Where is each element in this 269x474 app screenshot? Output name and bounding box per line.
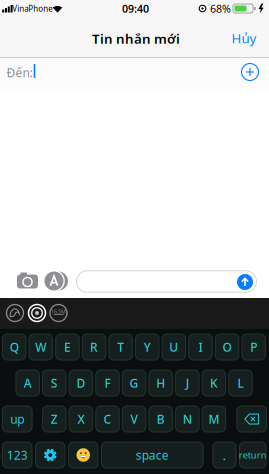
button[interactable]	[35, 442, 65, 468]
staticText: I	[198, 339, 202, 355]
button[interactable]: U	[162, 334, 186, 360]
button[interactable]: P	[242, 334, 265, 360]
staticText: Tin nhắn mới	[92, 30, 180, 47]
staticText: R	[90, 339, 98, 355]
button[interactable]: K	[202, 370, 226, 396]
staticText: Hủy	[231, 29, 256, 47]
staticText: D	[76, 375, 85, 391]
staticText: O	[223, 339, 232, 355]
button[interactable]: V	[122, 406, 146, 432]
button[interactable]	[68, 442, 98, 468]
staticText: space	[136, 447, 169, 463]
staticText: T	[117, 339, 124, 355]
button[interactable]: .	[213, 442, 236, 468]
button[interactable]	[6, 304, 23, 321]
staticText: return	[239, 449, 267, 461]
staticText: 123	[7, 447, 28, 463]
staticText: X	[77, 411, 84, 427]
button[interactable]: Y	[135, 334, 159, 360]
staticText: A	[24, 375, 32, 391]
staticText: F	[104, 375, 110, 391]
button[interactable]: Hủy	[226, 26, 262, 50]
staticText: up	[10, 411, 24, 427]
staticText: .	[222, 446, 226, 464]
button[interactable]: Z	[42, 406, 66, 432]
staticText: G	[130, 375, 139, 391]
staticText: Z	[51, 411, 58, 427]
button[interactable]: E	[56, 334, 79, 360]
button[interactable]	[237, 274, 253, 290]
button[interactable]: X	[69, 406, 93, 432]
button[interactable]	[237, 406, 266, 432]
button[interactable]: Q	[2, 334, 26, 360]
staticText: V	[131, 411, 138, 427]
staticText: B	[157, 411, 165, 427]
button[interactable]: G	[122, 370, 146, 396]
button[interactable]: 123	[2, 442, 32, 468]
button[interactable]: N	[176, 406, 199, 432]
staticText: K	[210, 375, 218, 391]
staticText: N	[183, 411, 192, 427]
staticText: U	[169, 339, 178, 355]
button[interactable]: I	[189, 334, 212, 360]
button[interactable]	[241, 63, 258, 80]
button[interactable]: H	[149, 370, 172, 396]
staticText: M	[208, 411, 219, 427]
button[interactable]: C	[96, 406, 119, 432]
staticText: E	[64, 339, 71, 355]
staticText: 16.5M	[51, 308, 66, 315]
button[interactable]: S	[42, 370, 66, 396]
button[interactable]: R	[82, 334, 106, 360]
staticText: Đến:	[6, 64, 32, 80]
button[interactable]	[0, 57, 269, 89]
staticText: P	[250, 339, 257, 355]
button[interactable]: A	[16, 370, 39, 396]
button[interactable]	[44, 270, 69, 291]
button[interactable]: return	[239, 442, 266, 468]
button[interactable]: T	[109, 334, 132, 360]
staticText: W	[35, 339, 46, 355]
staticText: 68%	[210, 1, 231, 16]
button[interactable]: up	[2, 406, 32, 432]
button[interactable]: D	[69, 370, 93, 396]
staticText: VinaPhone	[12, 3, 53, 14]
button[interactable]	[76, 270, 257, 293]
button[interactable]	[28, 304, 45, 321]
button[interactable]: 16.5M	[50, 304, 67, 321]
staticText: Y	[144, 339, 151, 355]
staticText: 09:40	[122, 1, 149, 16]
button[interactable]: J	[176, 370, 199, 396]
button[interactable]: O	[215, 334, 239, 360]
button[interactable]: space	[101, 442, 203, 468]
button[interactable]: B	[149, 406, 172, 432]
button[interactable]: F	[96, 370, 119, 396]
staticText: L	[237, 375, 243, 391]
staticText: Q	[10, 339, 19, 355]
button[interactable]: M	[202, 406, 226, 432]
button[interactable]	[17, 271, 38, 288]
button[interactable]: W	[29, 334, 53, 360]
button[interactable]: L	[229, 370, 252, 396]
staticText: C	[103, 411, 111, 427]
staticText: J	[186, 375, 189, 391]
staticText: H	[156, 375, 165, 391]
staticText: S	[51, 375, 58, 391]
